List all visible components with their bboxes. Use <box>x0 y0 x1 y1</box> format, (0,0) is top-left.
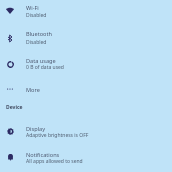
other: Display <box>7 128 14 135</box>
other: Wi-Fi <box>6 8 14 14</box>
staticText: Device <box>6 104 23 111</box>
button[interactable]: Wi-Fi <box>0 0 172 25</box>
button[interactable]: Notifications <box>0 145 172 171</box>
other: Notifications <box>8 154 13 160</box>
other: Data usage <box>7 61 14 68</box>
staticText: Disabled <box>26 12 47 19</box>
staticText: Display <box>26 125 46 133</box>
staticText: All apps allowed to send <box>26 158 83 165</box>
button[interactable]: Display <box>0 119 172 145</box>
staticText: Disabled <box>26 39 47 46</box>
button[interactable]: Bluetooth <box>0 25 172 51</box>
staticText: 0 B of data used <box>26 64 64 71</box>
staticText: Bluetooth <box>26 30 52 38</box>
button[interactable]: Data usage <box>0 51 172 77</box>
staticText: Notifications <box>26 151 60 159</box>
other: Bluetooth <box>8 35 12 42</box>
staticText: Data usage <box>26 57 56 65</box>
other: More <box>7 88 13 90</box>
staticText: Wi-Fi <box>26 4 39 12</box>
button[interactable]: More <box>0 77 172 103</box>
staticText: Adaptive brightness is OFF <box>26 132 89 139</box>
staticText: More <box>26 86 40 94</box>
